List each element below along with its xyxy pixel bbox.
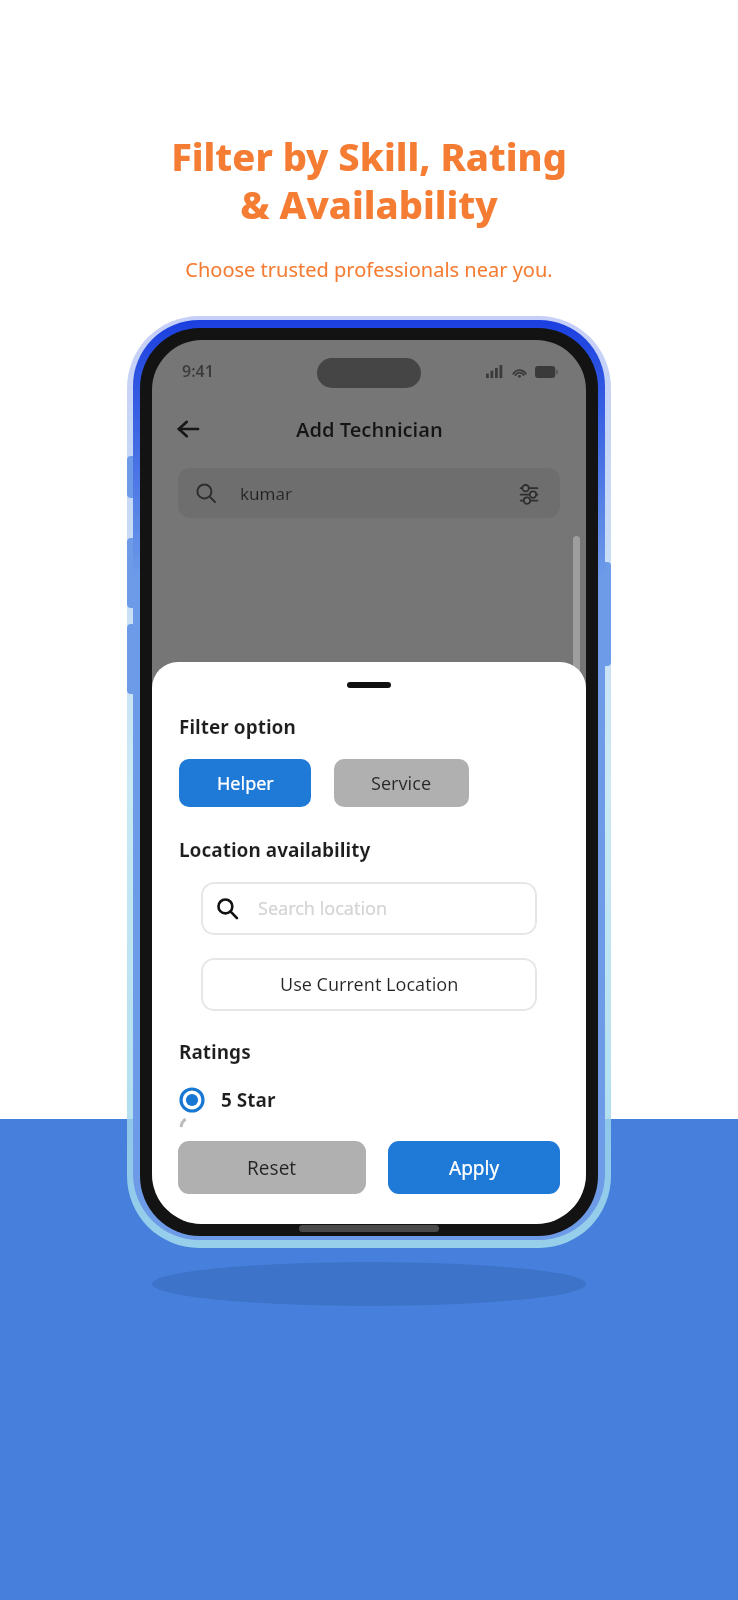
staticText: 9:41 bbox=[182, 360, 214, 382]
staticText: kumar bbox=[240, 482, 293, 505]
staticText: Apply bbox=[449, 1155, 500, 1181]
staticText: Search location bbox=[258, 896, 388, 921]
button[interactable]: Reset bbox=[178, 1141, 366, 1194]
button[interactable]: Use Current Location bbox=[201, 958, 537, 1011]
button[interactable]: Back bbox=[166, 407, 210, 451]
staticText: Use Current Location bbox=[280, 972, 459, 997]
button[interactable]: 5 Star bbox=[179, 1083, 586, 1117]
staticText: Filter option bbox=[179, 714, 296, 740]
button[interactable]: Apply bbox=[388, 1141, 560, 1194]
button[interactable]: kumar bbox=[178, 468, 560, 518]
staticText: Reset bbox=[247, 1155, 297, 1181]
button[interactable]: Helper bbox=[179, 759, 311, 807]
staticText: Add Technician bbox=[296, 416, 443, 443]
button[interactable]: Service bbox=[334, 759, 469, 807]
staticText: Choose trusted professionals near you. bbox=[185, 256, 553, 283]
staticText: 5 Star bbox=[221, 1087, 276, 1113]
staticText: Filter by Skill, Rating & Availability bbox=[171, 130, 567, 230]
staticText: Service bbox=[371, 771, 432, 796]
staticText: Ratings bbox=[179, 1039, 251, 1065]
staticText: Helper bbox=[217, 771, 274, 796]
button[interactable]: Filter bbox=[514, 478, 544, 508]
button[interactable]: Search location bbox=[201, 882, 537, 935]
staticText: Location availability bbox=[179, 837, 371, 863]
